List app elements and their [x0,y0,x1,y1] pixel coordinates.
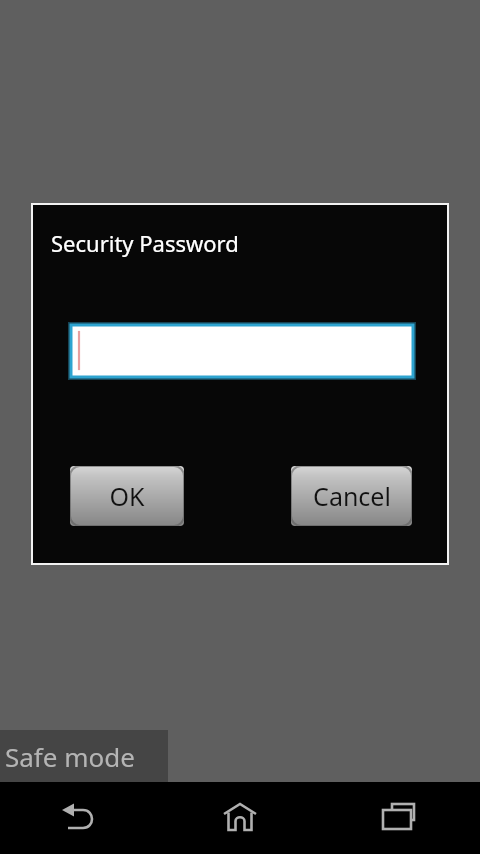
staticText: Security Password [51,228,239,258]
staticText: Cancel [313,479,391,513]
button[interactable]: Home [160,782,320,854]
button[interactable]: Password input field [68,322,416,380]
button[interactable]: Cancel [291,466,412,526]
button[interactable]: OK [70,466,184,526]
button[interactable]: Recent apps [320,782,480,854]
button[interactable]: Back [0,782,160,854]
staticText: Safe mode [5,739,135,774]
staticText: OK [109,479,145,513]
